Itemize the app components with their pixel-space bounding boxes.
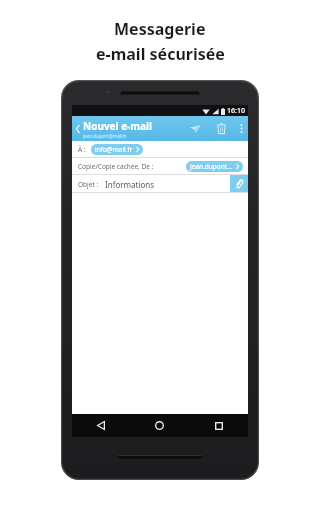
button[interactable]: Joindre un fichier (230, 175, 248, 193)
staticText: e-mail sécurisée (96, 43, 225, 65)
staticText: 16:10 (227, 106, 245, 116)
button[interactable]: Copie/Copie cachée, De : (72, 158, 248, 175)
staticText: jean.dupont@mail.fr (83, 133, 127, 139)
staticText: Informations (105, 179, 155, 190)
button[interactable]: Envoyer (182, 116, 208, 141)
button[interactable]: Applications récentes (189, 414, 248, 437)
button[interactable]: info@mail.fr (95, 144, 139, 155)
staticText: Copie/Copie cachée, De : (78, 162, 154, 171)
staticText: À : (78, 145, 86, 154)
button[interactable]: Supprimer (208, 116, 234, 141)
button[interactable]: jean.dupont… (190, 161, 239, 172)
button[interactable]: À : (72, 141, 248, 158)
button[interactable]: Nouvel e-mail (83, 119, 182, 139)
staticText: Objet : (78, 180, 99, 189)
button[interactable]: Accueil (130, 414, 189, 437)
button[interactable]: Plus d'options (234, 116, 248, 141)
staticText: info@mail.fr (95, 145, 133, 154)
staticText: Nouvel e-mail (83, 119, 153, 133)
button[interactable]: Retour (72, 116, 83, 141)
staticText: Messagerie (114, 18, 206, 40)
staticText: jean.dupont… (190, 162, 233, 171)
button[interactable]: Retour (72, 414, 130, 437)
